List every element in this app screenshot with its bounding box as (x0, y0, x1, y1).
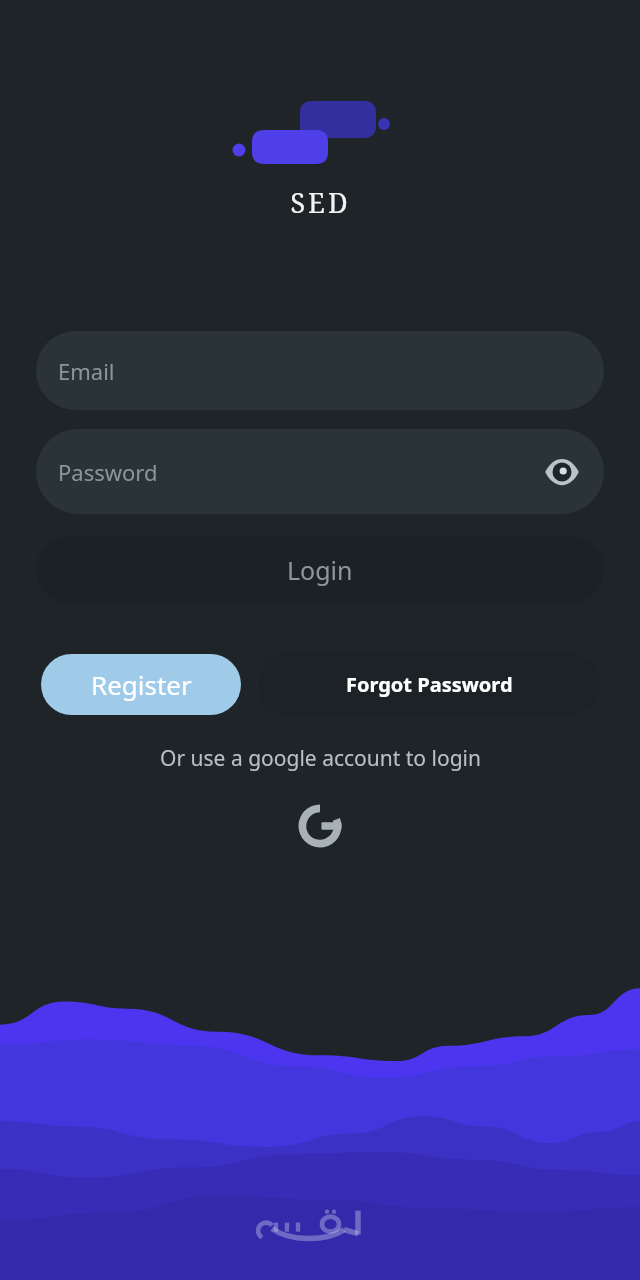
staticText: Or use a google account to login (160, 744, 481, 773)
staticText: SED (290, 184, 351, 221)
button[interactable]: Register (41, 654, 241, 715)
button[interactable]: Login (36, 536, 604, 603)
button[interactable]: Sign in with Google (292, 798, 348, 854)
button[interactable]: Forgot Password (258, 654, 600, 715)
button[interactable]: Show password (538, 448, 586, 496)
button[interactable]: Password (36, 429, 604, 514)
staticText: Password (58, 457, 158, 487)
staticText: Login (287, 553, 353, 587)
button[interactable]: Email (36, 331, 604, 410)
staticText: Register (91, 667, 192, 702)
staticText: Email (58, 356, 115, 386)
staticText: Forgot Password (346, 671, 513, 698)
